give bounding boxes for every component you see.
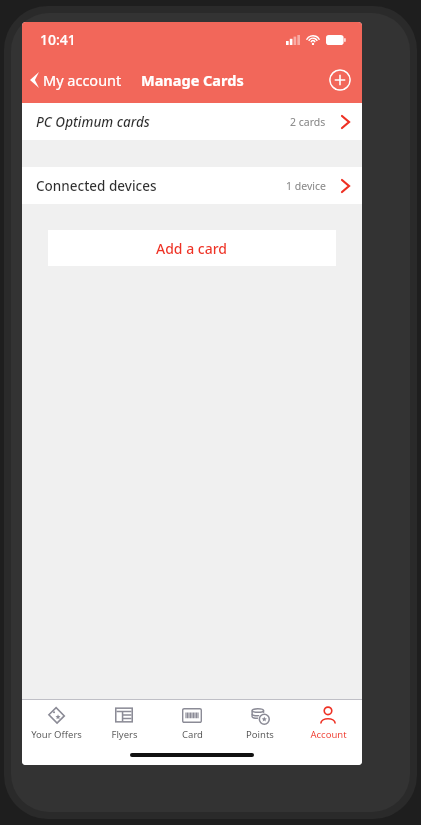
button[interactable]: My account [22, 64, 130, 96]
staticText: Manage Cards [141, 70, 244, 90]
staticText: Connected devices [36, 177, 157, 195]
button[interactable]: Card [158, 700, 226, 746]
staticText: 1 device [286, 179, 326, 193]
staticText: Add a card [156, 239, 228, 258]
button[interactable]: Connected devices [22, 167, 362, 204]
staticText: Account [310, 728, 347, 741]
staticText: 2 cards [290, 115, 326, 129]
button[interactable]: PC Optimum cards [22, 103, 362, 140]
staticText: Card [182, 728, 203, 741]
staticText: Your Offers [31, 728, 82, 741]
staticText: Flyers [111, 728, 138, 741]
button[interactable]: Account [294, 700, 362, 746]
button[interactable]: Points [226, 700, 294, 746]
button[interactable]: Add card [329, 69, 351, 91]
button[interactable]: Add a card [48, 230, 336, 266]
staticText: PC Optimum cards [36, 113, 150, 131]
staticText: Points [246, 728, 274, 741]
staticText: My account [43, 70, 122, 90]
staticText: 10:41 [40, 30, 76, 49]
button[interactable]: Flyers [90, 700, 158, 746]
button[interactable]: Your Offers [22, 700, 90, 746]
